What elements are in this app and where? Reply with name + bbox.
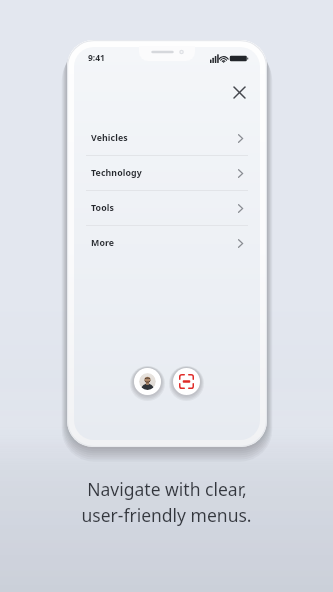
- button[interactable]: Technology: [86, 156, 248, 190]
- button[interactable]: Profile: [134, 368, 161, 395]
- staticText: Vehicles: [91, 132, 128, 144]
- button[interactable]: Close: [226, 79, 252, 105]
- staticText: user-friendly menus.: [81, 503, 252, 527]
- staticText: 9:41: [88, 52, 105, 64]
- staticText: Navigate with clear,: [87, 477, 247, 501]
- button[interactable]: Scan VIN: [173, 368, 200, 395]
- button[interactable]: More: [86, 226, 248, 260]
- button[interactable]: Vehicles: [86, 121, 248, 155]
- button[interactable]: Tools: [86, 191, 248, 225]
- staticText: Technology: [91, 167, 142, 179]
- staticText: More: [91, 237, 115, 249]
- staticText: Tools: [91, 202, 114, 214]
